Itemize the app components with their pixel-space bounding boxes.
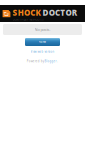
staticText: View web version [30, 50, 54, 53]
staticText: DON'T PLAY WITHOUT IT [12, 18, 43, 21]
button[interactable]: Blogger [44, 59, 56, 63]
staticText: No posts. [34, 27, 50, 32]
staticText: Powered by [27, 59, 44, 63]
staticText: DOCTOR [40, 7, 77, 18]
button[interactable]: Home [25, 38, 60, 46]
staticText: SHOCK [12, 7, 40, 18]
staticText: Blogger [44, 59, 56, 63]
button[interactable]: View web version [30, 50, 54, 53]
staticText: Home [38, 40, 46, 44]
